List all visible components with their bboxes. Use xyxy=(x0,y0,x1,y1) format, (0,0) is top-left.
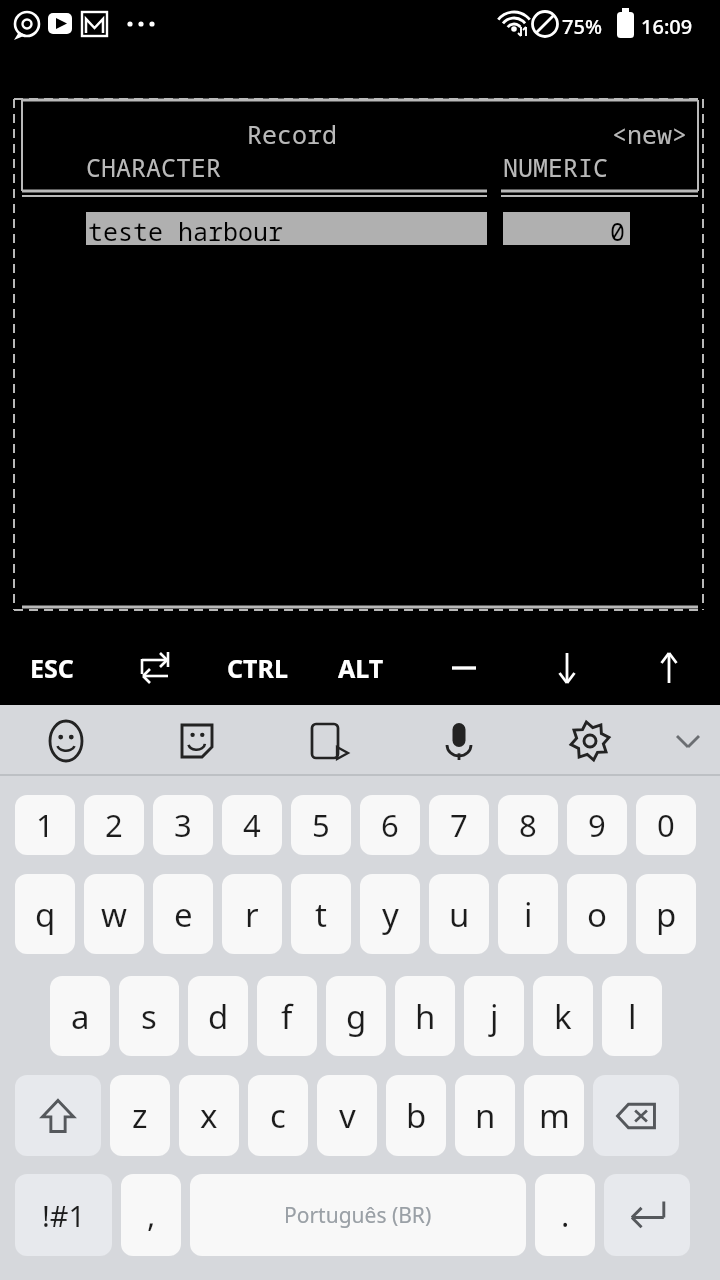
staticText: y xyxy=(382,892,399,937)
staticText: 75% xyxy=(562,13,602,40)
button[interactable]: q xyxy=(15,874,75,954)
button[interactable]: CTRL xyxy=(206,631,309,705)
staticText: 3 xyxy=(174,804,192,846)
button[interactable]: Settings xyxy=(524,705,655,776)
button[interactable]: ESC xyxy=(0,631,103,705)
staticText: 0 xyxy=(503,214,625,248)
button[interactable]: l xyxy=(602,976,662,1056)
staticText: 6 xyxy=(381,804,399,846)
button[interactable]: v xyxy=(317,1075,377,1156)
button[interactable]: o xyxy=(567,874,627,954)
button[interactable]: t xyxy=(291,874,351,954)
staticText: i xyxy=(524,892,533,937)
staticText: 4 xyxy=(243,804,261,846)
button[interactable]: Shift xyxy=(15,1075,101,1156)
staticText: !#1 xyxy=(42,1196,86,1235)
button[interactable]: GIF xyxy=(262,705,393,776)
button[interactable]: !#1 xyxy=(15,1174,112,1256)
button[interactable]: j xyxy=(464,976,524,1056)
button[interactable]: p xyxy=(636,874,696,954)
button[interactable]: Arrow up xyxy=(618,631,720,705)
button[interactable]: a xyxy=(50,976,110,1056)
button[interactable]: i xyxy=(498,874,558,954)
button[interactable]: n xyxy=(455,1075,515,1156)
button[interactable]: u xyxy=(429,874,489,954)
button[interactable]: b xyxy=(386,1075,446,1156)
button[interactable]: Backspace xyxy=(593,1075,679,1156)
button[interactable]: Arrow down xyxy=(515,631,618,705)
staticText: ESC xyxy=(30,651,74,685)
button[interactable]: h xyxy=(395,976,455,1056)
button[interactable]: Enter xyxy=(604,1174,690,1256)
button[interactable]: Minus xyxy=(412,631,515,705)
staticText: Português (BR) xyxy=(284,1201,432,1230)
staticText: x xyxy=(200,1093,218,1138)
staticText: 2 xyxy=(105,804,123,846)
button[interactable]: 5 xyxy=(291,795,351,855)
staticText: z xyxy=(132,1093,148,1138)
staticText: p xyxy=(656,892,677,937)
button[interactable]: Tab xyxy=(103,631,206,705)
button[interactable]: d xyxy=(188,976,248,1056)
staticText: e xyxy=(174,892,193,937)
button[interactable]: w xyxy=(84,874,144,954)
staticText: 9 xyxy=(588,804,606,846)
button[interactable]: 4 xyxy=(222,795,282,855)
button[interactable]: 7 xyxy=(429,795,489,855)
staticText: Record xyxy=(247,117,338,151)
staticText: n xyxy=(475,1093,496,1138)
button[interactable]: , xyxy=(121,1174,181,1256)
staticText: g xyxy=(346,994,367,1039)
staticText: c xyxy=(270,1093,286,1138)
staticText: . xyxy=(561,1194,570,1236)
staticText: 5 xyxy=(312,804,330,846)
button[interactable]: e xyxy=(153,874,213,954)
staticText: d xyxy=(208,994,229,1039)
staticText: t xyxy=(315,892,327,937)
button[interactable]: 8 xyxy=(498,795,558,855)
button[interactable]: 1 xyxy=(15,795,75,855)
staticText: 16:09 xyxy=(641,13,693,40)
button[interactable]: m xyxy=(524,1075,584,1156)
button[interactable]: ALT xyxy=(309,631,412,705)
button[interactable]: x xyxy=(179,1075,239,1156)
button[interactable]: . xyxy=(535,1174,595,1256)
staticText: teste harbour xyxy=(88,214,284,248)
button[interactable]: g xyxy=(326,976,386,1056)
staticText: k xyxy=(554,994,572,1039)
staticText: o xyxy=(587,892,607,937)
staticText: j xyxy=(490,994,499,1039)
button[interactable]: Português (BR) xyxy=(190,1174,526,1256)
button[interactable]: Voice input xyxy=(393,705,524,776)
staticText: v xyxy=(339,1093,356,1138)
button[interactable]: y xyxy=(360,874,420,954)
staticText: 1 xyxy=(36,804,54,846)
staticText: , xyxy=(147,1194,156,1236)
button[interactable]: f xyxy=(257,976,317,1056)
staticText: CHARACTER xyxy=(86,150,222,184)
staticText: 8 xyxy=(519,804,537,846)
button[interactable]: s xyxy=(119,976,179,1056)
button[interactable]: r xyxy=(222,874,282,954)
button[interactable]: 0 xyxy=(636,795,696,855)
button[interactable]: z xyxy=(110,1075,170,1156)
staticText: a xyxy=(71,994,90,1039)
staticText: NUMERIC xyxy=(503,150,609,184)
button[interactable]: Hide keyboard xyxy=(655,705,720,776)
button[interactable]: Emoji xyxy=(0,705,131,776)
button[interactable]: c xyxy=(248,1075,308,1156)
button[interactable]: k xyxy=(533,976,593,1056)
staticText: 0 xyxy=(657,804,675,846)
staticText: h xyxy=(415,994,436,1039)
staticText: r xyxy=(245,892,259,937)
staticText: u xyxy=(449,892,470,937)
button[interactable]: 3 xyxy=(153,795,213,855)
staticText: l xyxy=(628,994,637,1039)
button[interactable]: 9 xyxy=(567,795,627,855)
button[interactable]: 2 xyxy=(84,795,144,855)
button[interactable]: 6 xyxy=(360,795,420,855)
staticText: m xyxy=(539,1093,570,1138)
button[interactable]: Sticker xyxy=(131,705,262,776)
staticText: f xyxy=(281,994,293,1039)
staticText: CTRL xyxy=(227,651,288,685)
